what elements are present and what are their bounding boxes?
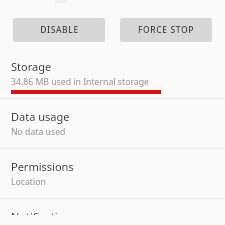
staticText: 34.86 MB used in Internal storage bbox=[11, 76, 149, 88]
button[interactable]: DISABLE bbox=[13, 18, 105, 42]
button[interactable]: Storage bbox=[0, 57, 225, 98]
staticText: Notifications bbox=[11, 209, 77, 215]
button[interactable]: FORCE STOP bbox=[120, 18, 212, 42]
staticText: DISABLE bbox=[40, 24, 79, 36]
staticText: Permissions bbox=[11, 159, 74, 174]
staticText: No data used bbox=[11, 126, 66, 138]
button[interactable]: Notifications bbox=[0, 199, 225, 225]
button[interactable]: Data usage bbox=[0, 99, 225, 148]
button[interactable]: Permissions bbox=[0, 149, 225, 198]
staticText: Data usage bbox=[11, 109, 70, 124]
staticText: Storage bbox=[11, 59, 52, 74]
staticText: Location bbox=[11, 176, 46, 188]
staticText: FORCE STOP bbox=[138, 24, 194, 36]
